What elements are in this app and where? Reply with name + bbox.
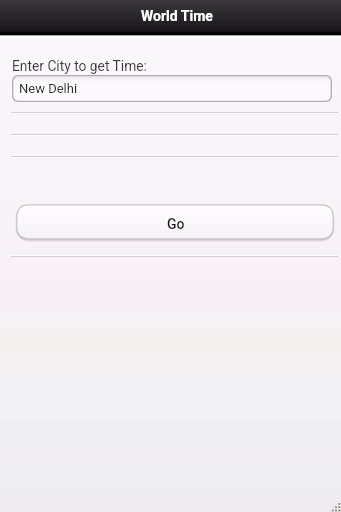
staticText: World Time xyxy=(141,8,213,24)
button[interactable]: Go xyxy=(16,204,334,242)
staticText: Go xyxy=(167,216,185,232)
button[interactable]: New Delhi xyxy=(12,75,332,102)
staticText: Enter City to get Time: xyxy=(12,58,147,74)
staticText: New Delhi xyxy=(19,81,78,96)
